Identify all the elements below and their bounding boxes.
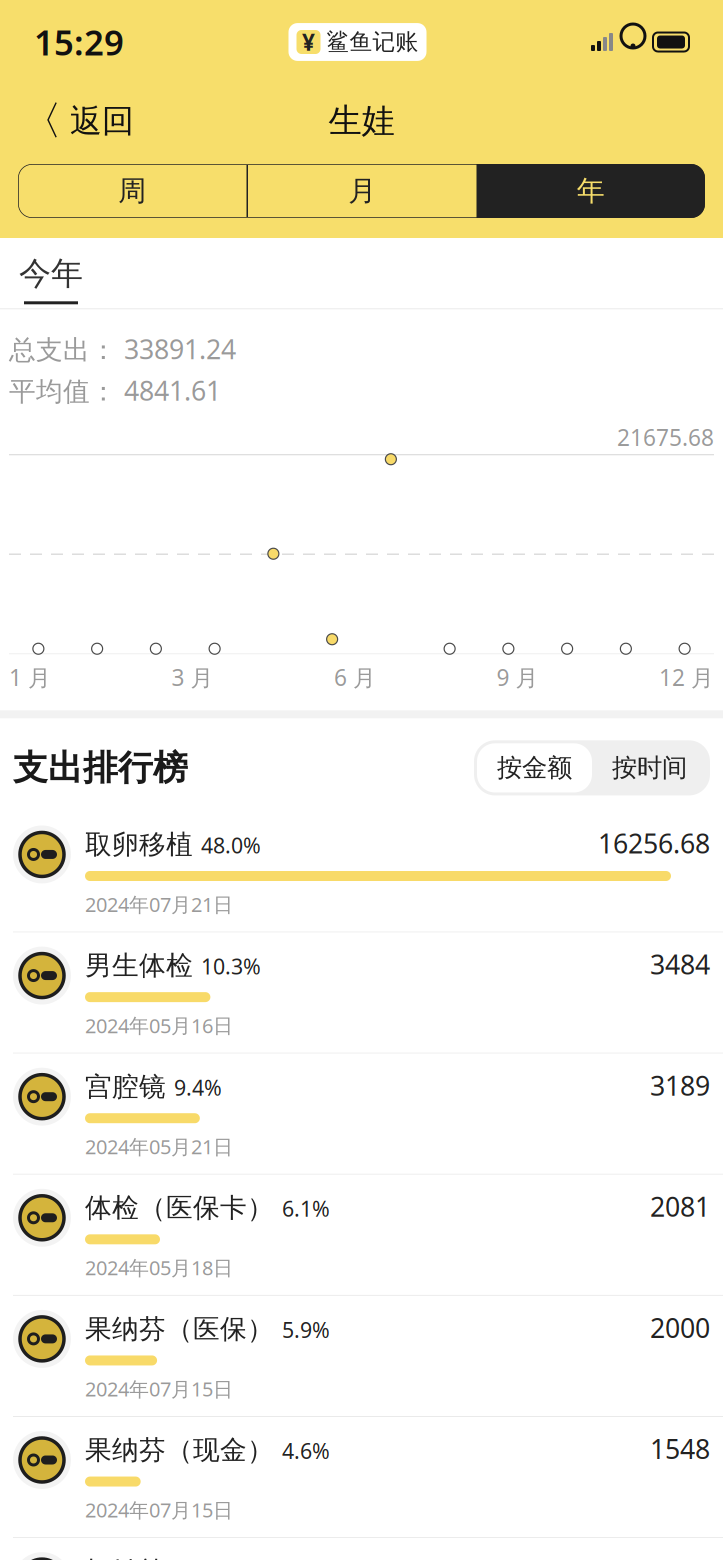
staticText: 4.6% [282, 1437, 330, 1465]
staticText: 男生体检 [85, 949, 193, 982]
button[interactable]: 月 [248, 164, 476, 218]
button[interactable]: 按金额 [477, 743, 592, 792]
staticText: 3484 [650, 947, 710, 982]
staticText: 2024年05月21日 [85, 1133, 233, 1160]
staticText: 3189 [650, 1068, 710, 1103]
staticText: 2024年07月15日 [85, 1375, 233, 1402]
staticText: 打针等 [85, 1555, 166, 1560]
staticText: 2024年05月16日 [85, 1012, 233, 1039]
staticText: 返回 [70, 101, 134, 141]
button[interactable]: 体检（医保卡） [0, 1175, 723, 1295]
button[interactable]: 男生体检 [0, 933, 723, 1053]
staticText: 5.9% [282, 1315, 330, 1344]
staticText: 平均值： 4841.61 [9, 373, 221, 408]
staticText: ¥ [302, 27, 315, 57]
staticText: 16256.68 [598, 825, 710, 861]
staticText: 按时间 [612, 752, 687, 783]
staticText: 9.4% [174, 1073, 222, 1102]
staticText: 取卵移植 [85, 828, 193, 861]
staticText: 果纳芬（医保） [85, 1313, 274, 1345]
staticText: 支出排行榜 [13, 747, 188, 789]
staticText: 鲨鱼记账 [326, 28, 418, 56]
button[interactable]: 果纳芬（现金） [0, 1417, 723, 1537]
staticText: 总支出： 33891.24 [9, 331, 236, 367]
button[interactable]: 宫腔镜 [0, 1054, 723, 1174]
button[interactable]: 周 [18, 164, 246, 218]
staticText: 1548 [650, 1431, 710, 1466]
staticText: 果纳芬（现金） [85, 1434, 274, 1467]
staticText: 宫腔镜 [85, 1070, 166, 1103]
staticText: 〈 [22, 96, 62, 145]
staticText: 体检（医保卡） [85, 1192, 274, 1224]
staticText: 21675.68 [617, 422, 714, 452]
staticText: 10.3% [201, 952, 261, 980]
staticText: 6 月 [334, 662, 376, 692]
button[interactable]: 今年 [13, 238, 89, 304]
staticText: 2081 [650, 1189, 710, 1224]
staticText: 今年 [19, 254, 83, 293]
button[interactable]: 按时间 [592, 743, 707, 792]
staticText: 9 月 [496, 662, 538, 692]
button[interactable]: 年 [476, 164, 705, 218]
staticText: 按金额 [497, 752, 572, 783]
staticText: 周 [118, 174, 146, 208]
staticText: 月 [348, 174, 376, 208]
staticText: 2000 [650, 1310, 710, 1345]
button[interactable]: 果纳芬（医保） [0, 1296, 723, 1416]
staticText: 3 月 [171, 662, 213, 692]
staticText: 6.1% [282, 1194, 330, 1223]
staticText: 2024年05月18日 [85, 1254, 233, 1281]
staticText: 年 [577, 174, 605, 208]
staticText: 15:29 [34, 19, 124, 65]
button[interactable]: 〈 [0, 88, 156, 153]
button[interactable]: 取卵移植 [0, 811, 723, 932]
staticText: 2024年07月21日 [85, 891, 233, 918]
staticText: 1 月 [9, 662, 51, 692]
button[interactable]: 打针等 [0, 1538, 723, 1560]
staticText: 生娃 [328, 100, 394, 141]
staticText: 2024年07月15日 [85, 1497, 233, 1523]
staticText: 48.0% [201, 831, 261, 859]
staticText: 12 月 [659, 662, 714, 692]
